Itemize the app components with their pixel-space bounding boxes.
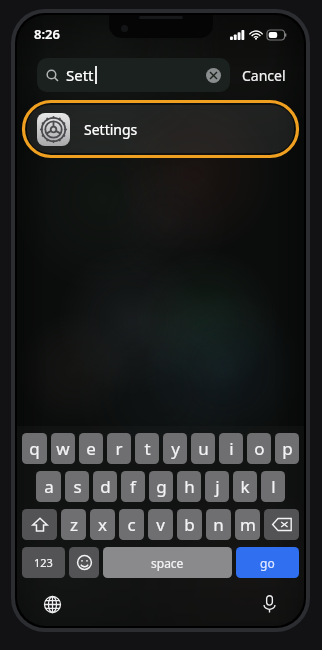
button[interactable]: j	[205, 471, 229, 502]
button[interactable]: t	[135, 433, 159, 464]
button[interactable]: v	[148, 509, 173, 540]
staticText: go	[260, 555, 275, 571]
staticText: a	[44, 475, 54, 498]
button[interactable]: Change keyboard	[39, 591, 65, 617]
staticText: z	[70, 513, 78, 536]
button[interactable]: z	[61, 509, 86, 540]
button[interactable]: go	[236, 547, 299, 578]
button[interactable]: i	[219, 433, 243, 464]
button[interactable]: Settings	[27, 105, 294, 153]
staticText: l	[271, 475, 276, 498]
button[interactable]: w	[51, 433, 75, 464]
staticText: e	[86, 437, 96, 460]
staticText: p	[282, 437, 293, 460]
staticText: w	[56, 437, 70, 460]
button[interactable]: k	[233, 471, 257, 502]
staticText: u	[198, 437, 209, 460]
button[interactable]: Clear text	[206, 68, 221, 83]
staticText: k	[240, 475, 250, 498]
button[interactable]: Shift	[22, 509, 57, 540]
staticText: q	[29, 437, 40, 460]
staticText: space	[151, 555, 184, 571]
staticText: r	[115, 437, 123, 460]
button[interactable]: l	[261, 471, 285, 502]
button[interactable]: Emoji	[69, 547, 99, 578]
button[interactable]: o	[247, 433, 271, 464]
button[interactable]: x	[90, 509, 115, 540]
button[interactable]: e	[79, 433, 103, 464]
staticText: c	[127, 513, 136, 536]
button[interactable]: Delete	[264, 509, 299, 540]
staticText: s	[73, 475, 82, 498]
button[interactable]: n	[206, 509, 231, 540]
button[interactable]: d	[93, 471, 117, 502]
staticText: i	[229, 437, 234, 460]
staticText: f	[130, 475, 136, 498]
button[interactable]: c	[119, 509, 144, 540]
button[interactable]: space	[103, 547, 232, 578]
staticText: b	[184, 513, 195, 536]
staticText: m	[240, 513, 256, 536]
button[interactable]: u	[191, 433, 215, 464]
staticText: t	[144, 437, 151, 460]
staticText: j	[215, 475, 220, 498]
button[interactable]: g	[149, 471, 173, 502]
button[interactable]: h	[177, 471, 201, 502]
button[interactable]: r	[107, 433, 131, 464]
button[interactable]: q	[22, 433, 47, 464]
staticText: n	[213, 513, 224, 536]
button[interactable]: Cancel	[240, 60, 288, 91]
button[interactable]: Sett	[37, 58, 230, 92]
staticText: g	[156, 475, 167, 498]
button[interactable]: m	[235, 509, 260, 540]
button[interactable]: b	[177, 509, 202, 540]
button[interactable]: s	[65, 471, 89, 502]
staticText: x	[98, 513, 107, 536]
staticText: y	[171, 437, 180, 460]
staticText: Cancel	[242, 66, 286, 85]
staticText: 123	[34, 555, 53, 570]
button[interactable]: f	[121, 471, 145, 502]
staticText: o	[254, 437, 265, 460]
staticText: Settings	[84, 120, 138, 139]
button[interactable]: Dictation	[256, 591, 282, 617]
staticText: d	[100, 475, 111, 498]
staticText: h	[184, 475, 195, 498]
staticText: v	[156, 513, 165, 536]
button[interactable]: y	[163, 433, 187, 464]
button[interactable]: 123	[22, 547, 65, 578]
staticText: 8:26	[34, 25, 60, 43]
button[interactable]: a	[36, 471, 61, 502]
button[interactable]: p	[275, 433, 299, 464]
staticText: Sett	[66, 65, 94, 85]
